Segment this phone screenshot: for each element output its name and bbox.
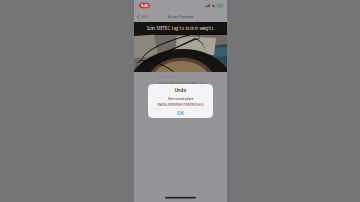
staticText: 9:45 [141,3,148,8]
staticText: Removed plant [168,96,193,101]
staticText: Undo [174,87,186,93]
staticText: OK [177,110,184,116]
button[interactable]: OK [148,108,213,118]
staticText: Scan METRC tag to lock in weight. [146,25,214,31]
staticText: Harvest Tag [157,74,176,79]
staticText: 1A40E30000060700000CEED. [157,80,207,86]
button[interactable]: BACK [134,11,152,21]
staticText: Auto Harvest [168,14,193,19]
staticText: 1A40E30000060700000CEED. [156,102,204,107]
staticText: BACK [141,14,149,19]
